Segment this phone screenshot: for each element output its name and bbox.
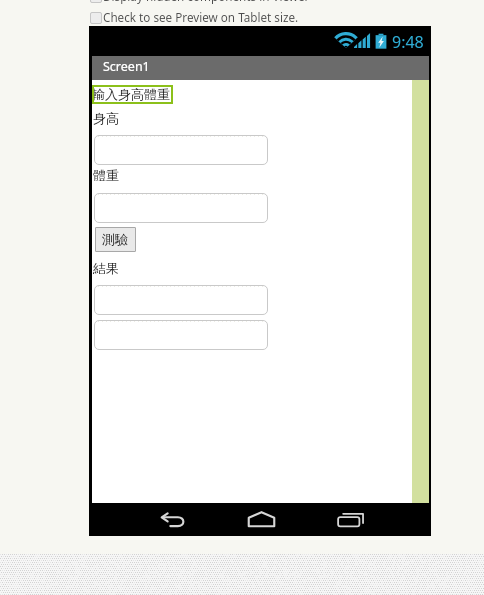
button[interactable]: Display hidden components in Viewer (90, 0, 310, 4)
button[interactable]: Check to see Preview on Tablet size. (90, 9, 299, 25)
button[interactable] (94, 285, 268, 315)
staticText: 9:48 (392, 31, 424, 53)
button[interactable]: 輸入身高體重 (92, 85, 173, 104)
staticText: 身高 (93, 110, 119, 126)
staticText: Screen1 (103, 58, 150, 75)
button[interactable]: 測驗 (95, 227, 136, 252)
button[interactable] (94, 193, 268, 223)
staticText: 輸入身高體重 (92, 86, 170, 102)
button[interactable] (94, 135, 268, 165)
button[interactable]: Back (151, 503, 194, 536)
staticText: 體重 (93, 167, 119, 183)
button[interactable] (94, 320, 268, 350)
staticText: Display hidden components in Viewer (103, 0, 310, 4)
staticText: 結果 (93, 260, 119, 276)
button[interactable]: Home (239, 503, 284, 536)
staticText: Check to see Preview on Tablet size. (103, 9, 299, 25)
staticText: 測驗 (102, 231, 128, 247)
button[interactable]: Recents (329, 503, 373, 536)
